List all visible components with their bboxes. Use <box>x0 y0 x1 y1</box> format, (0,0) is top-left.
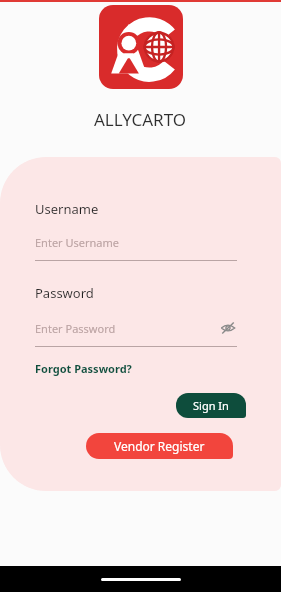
button[interactable]: Vendor Register <box>86 433 233 459</box>
staticText: Username <box>35 200 99 218</box>
staticText: Enter Username <box>35 235 120 250</box>
staticText: Password <box>35 284 94 302</box>
staticText: Vendor Register <box>114 438 205 454</box>
button[interactable]: Show password <box>219 319 237 337</box>
staticText: Sign In <box>193 398 229 413</box>
button[interactable]: Enter Password <box>35 319 237 337</box>
button[interactable]: Sign In <box>176 393 246 418</box>
button[interactable]: Enter Username <box>35 235 237 250</box>
staticText: ALLYCARTO <box>94 108 187 131</box>
staticText: Forgot Password? <box>35 361 132 376</box>
button[interactable]: Forgot Password? <box>35 361 132 376</box>
staticText: Enter Password <box>35 321 116 336</box>
